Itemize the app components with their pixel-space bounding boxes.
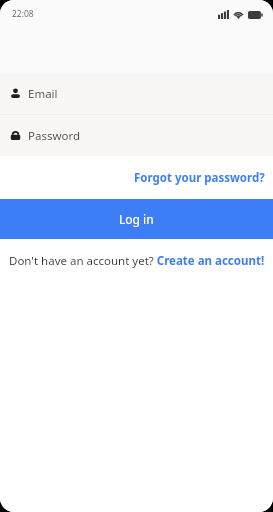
button[interactable]: Forgot your password? bbox=[126, 164, 273, 192]
staticText: 22:08 bbox=[12, 8, 34, 20]
staticText: Forgot your password? bbox=[134, 170, 265, 186]
button[interactable]: Don't have an account yet? Create an acc… bbox=[3, 248, 271, 274]
button[interactable]: Log in bbox=[0, 199, 273, 239]
button[interactable]: Password bbox=[0, 115, 273, 156]
other: Password bbox=[10, 130, 21, 141]
other: Email bbox=[10, 88, 21, 99]
other: Battery bbox=[248, 11, 263, 19]
other: Wi-Fi bbox=[233, 10, 244, 19]
button[interactable]: Email bbox=[0, 73, 273, 114]
staticText: Password bbox=[28, 128, 81, 144]
other: Signal strength bbox=[218, 10, 229, 19]
staticText: Log in bbox=[119, 211, 154, 227]
staticText: Don't have an account yet? Create an acc… bbox=[9, 253, 265, 269]
staticText: Email bbox=[28, 86, 58, 102]
